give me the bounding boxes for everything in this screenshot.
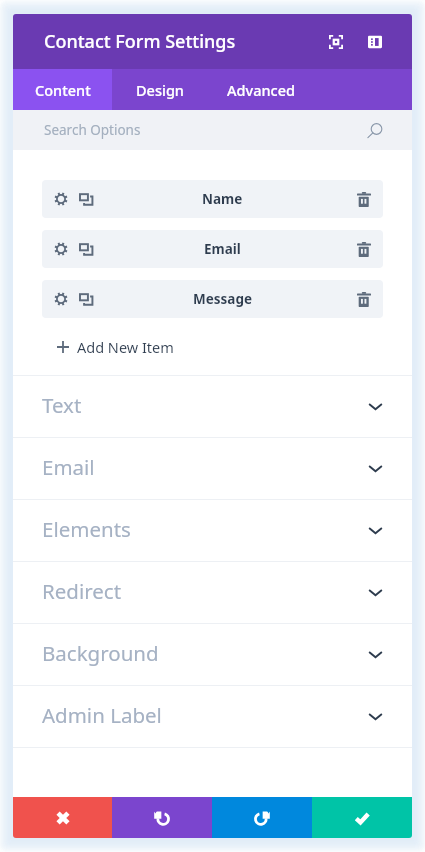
button[interactable]: Elements bbox=[13, 500, 412, 561]
button[interactable]: Add New Item bbox=[42, 318, 383, 375]
button[interactable]: Cancel bbox=[13, 797, 112, 838]
button[interactable]: Redo bbox=[212, 797, 312, 838]
button[interactable]: Email bbox=[13, 438, 412, 499]
staticText: Advanced bbox=[227, 80, 295, 100]
staticText: Background bbox=[42, 639, 159, 667]
button[interactable]: Redirect bbox=[13, 562, 412, 623]
button[interactable]: Delete bbox=[345, 180, 383, 218]
button[interactable]: Settings bbox=[48, 280, 73, 318]
button[interactable]: Admin Label bbox=[13, 686, 412, 747]
button[interactable]: Settings bbox=[42, 180, 383, 218]
staticText: Email bbox=[42, 453, 95, 481]
staticText: Elements bbox=[42, 515, 131, 543]
button[interactable]: Expand bbox=[323, 29, 349, 55]
button[interactable]: Settings bbox=[42, 280, 383, 318]
staticText: Design bbox=[136, 80, 184, 100]
staticText: Admin Label bbox=[42, 701, 162, 729]
button[interactable]: Settings bbox=[42, 230, 383, 268]
staticText: Search Options bbox=[44, 121, 141, 139]
button[interactable]: Delete bbox=[345, 230, 383, 268]
button[interactable]: Undo bbox=[112, 797, 212, 838]
staticText: Add New Item bbox=[77, 337, 174, 357]
staticText: Redirect bbox=[42, 577, 122, 605]
button[interactable]: Settings bbox=[48, 180, 73, 218]
button[interactable]: Text bbox=[13, 376, 412, 437]
staticText: Name bbox=[202, 190, 243, 208]
button[interactable]: Delete bbox=[345, 280, 383, 318]
staticText: Email bbox=[204, 240, 241, 258]
button[interactable]: Settings bbox=[48, 230, 73, 268]
staticText: Message bbox=[193, 290, 253, 308]
button[interactable]: Duplicate bbox=[73, 280, 100, 318]
button[interactable]: Duplicate bbox=[73, 180, 100, 218]
button[interactable]: Save bbox=[312, 797, 412, 838]
button[interactable]: Background bbox=[13, 624, 412, 685]
button[interactable]: Layout bbox=[362, 29, 388, 55]
button[interactable]: Content bbox=[13, 69, 112, 110]
staticText: Content bbox=[35, 80, 91, 100]
button[interactable]: Design bbox=[112, 69, 208, 110]
button[interactable]: Duplicate bbox=[73, 230, 100, 268]
staticText: Contact Form Settings bbox=[44, 29, 236, 54]
button[interactable]: Advanced bbox=[208, 69, 313, 110]
staticText: Text bbox=[42, 391, 82, 419]
